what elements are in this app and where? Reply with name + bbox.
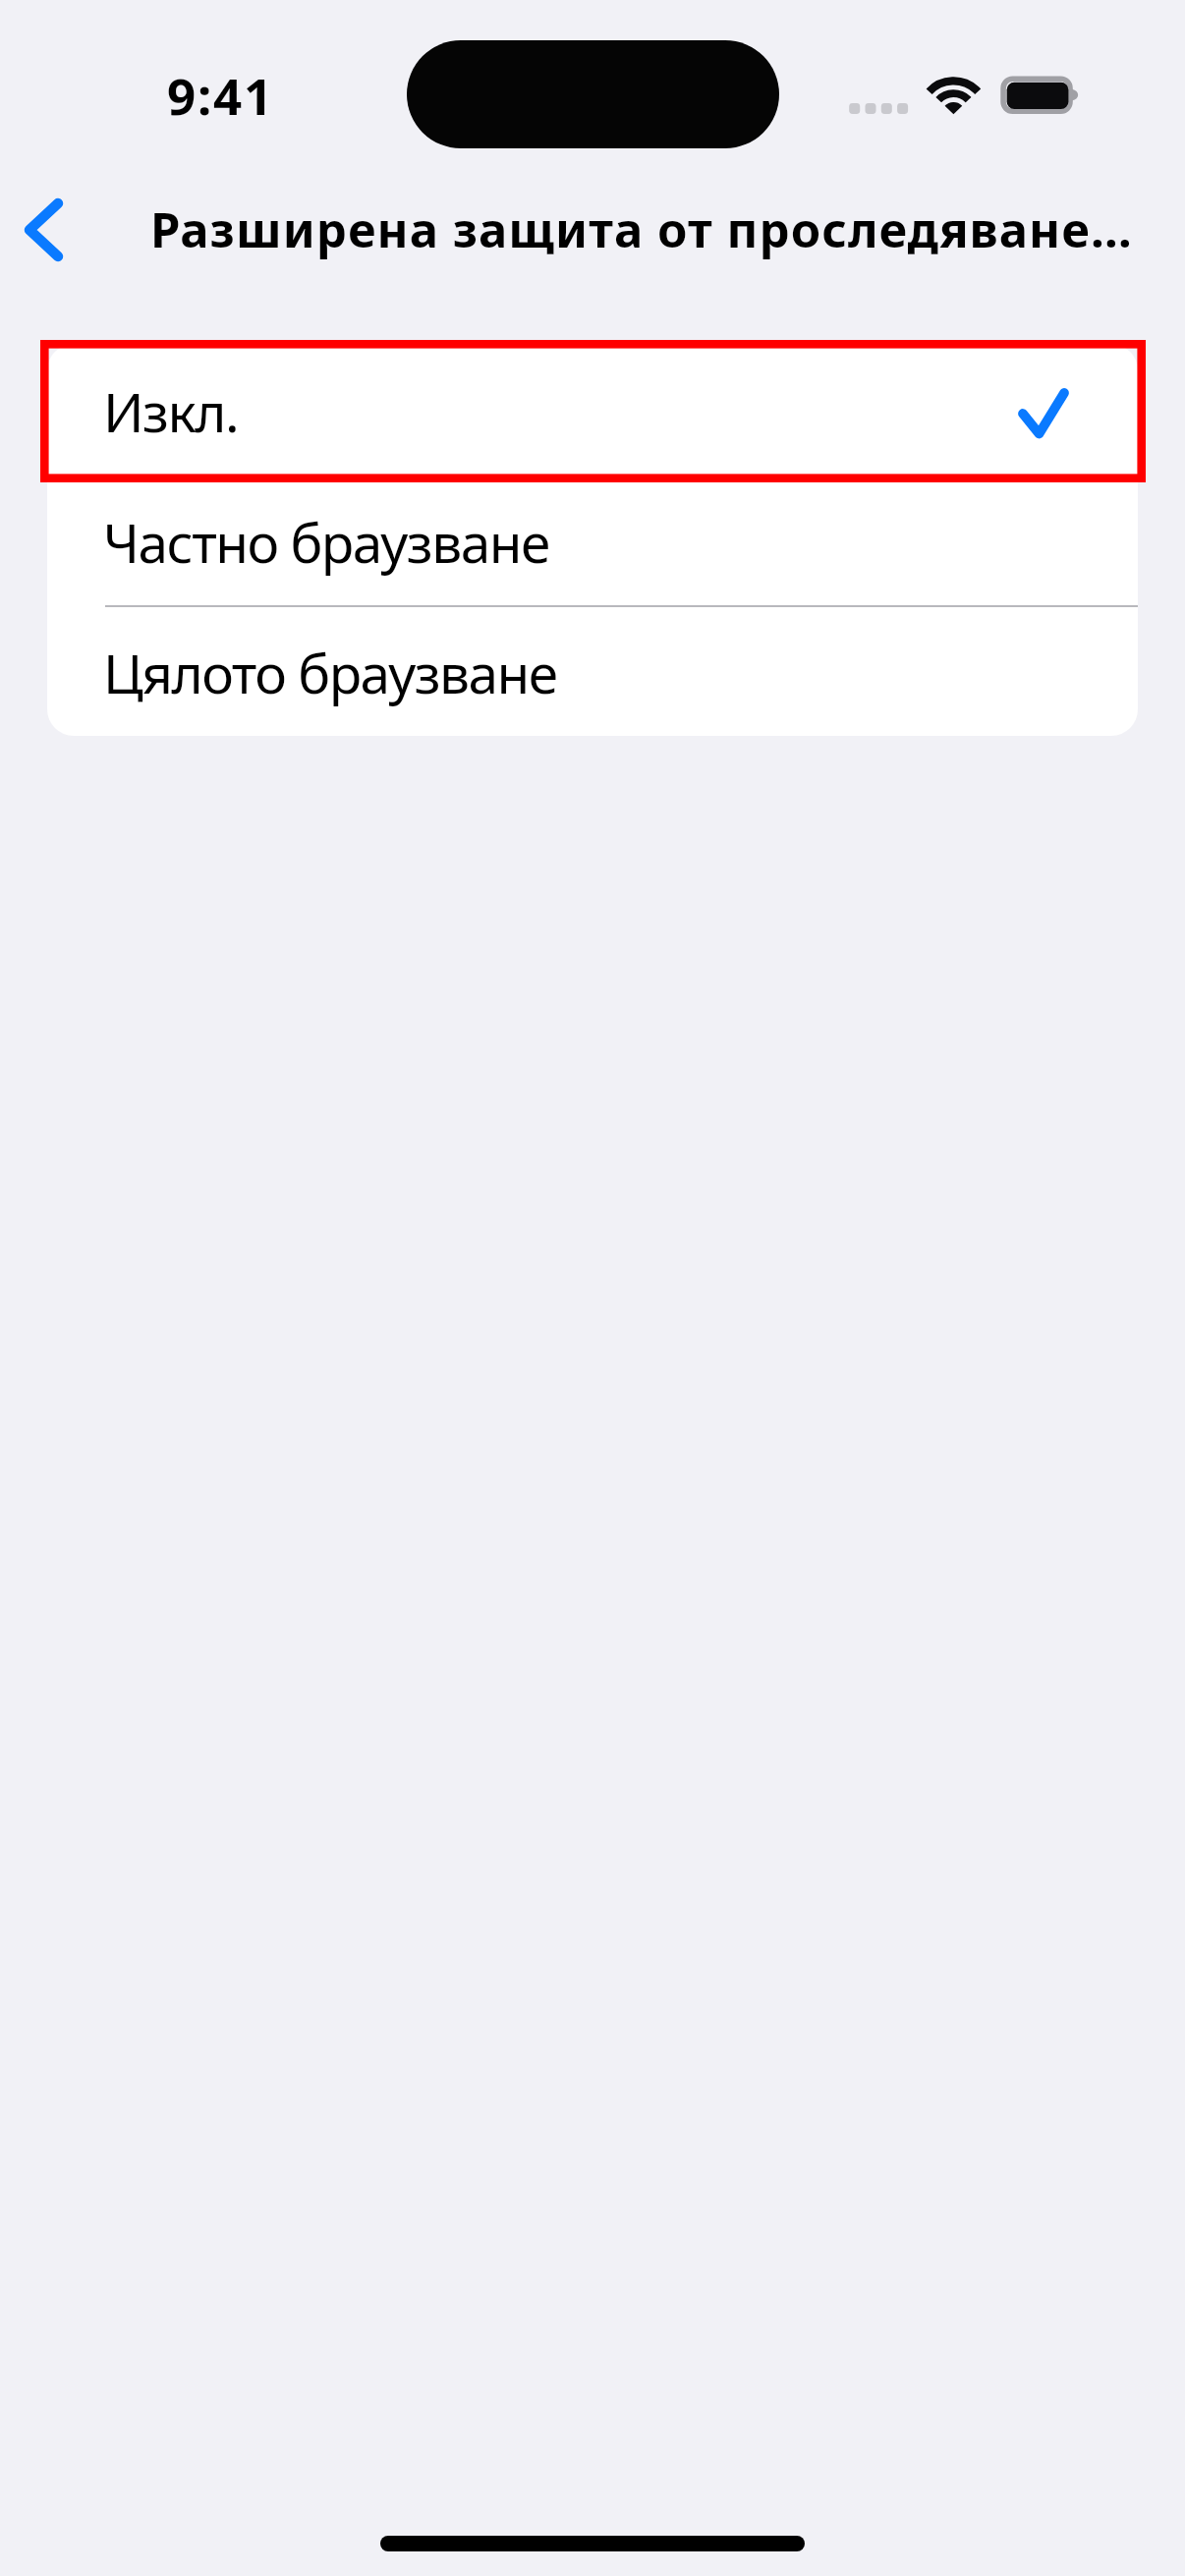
button[interactable]: Изкл.	[47, 344, 1138, 475]
staticText: Цялото браузване	[103, 636, 557, 709]
staticText: Разширена защита от проследяване…	[150, 196, 1133, 262]
staticText: Изкл.	[103, 374, 239, 448]
other: Selected	[1021, 382, 1076, 437]
staticText: 9:41	[167, 61, 275, 120]
button[interactable]: Back	[0, 171, 116, 281]
button[interactable]: Частно браузване	[47, 475, 1138, 605]
staticText: Частно браузване	[103, 505, 549, 579]
button[interactable]: Цялото браузване	[47, 605, 1138, 736]
